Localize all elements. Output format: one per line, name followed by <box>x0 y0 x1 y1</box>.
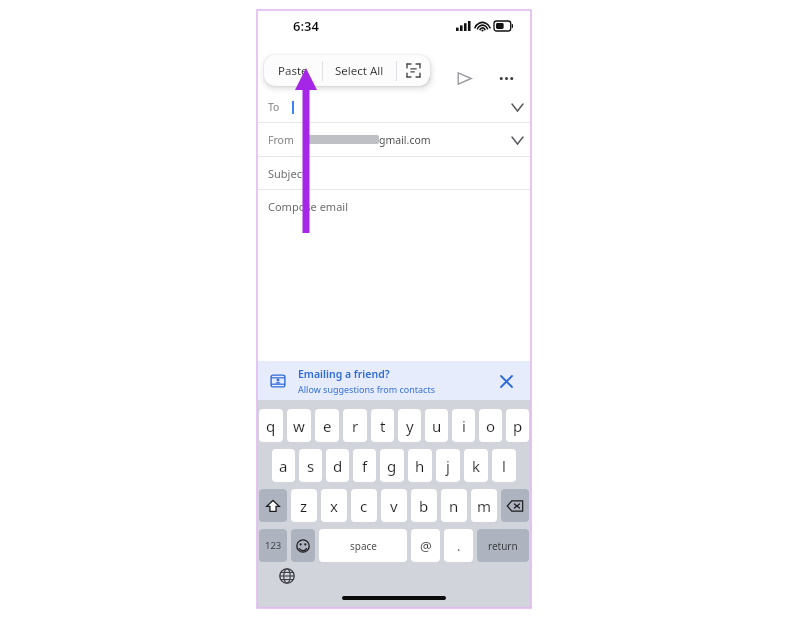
staticText: Allow suggestions from contacts <box>298 383 435 395</box>
staticText: q <box>266 416 276 436</box>
button[interactable]: space <box>319 529 407 562</box>
button[interactable]: Select All <box>323 55 396 86</box>
staticText: Compose email <box>268 199 348 214</box>
staticText: z <box>300 496 308 516</box>
button[interactable]: From <box>257 123 531 156</box>
staticText: d <box>333 456 343 476</box>
staticText: g <box>387 456 397 476</box>
staticText: From <box>268 133 294 147</box>
button[interactable]: f <box>353 449 376 482</box>
staticText: return <box>488 539 518 553</box>
button[interactable]: m <box>471 489 497 522</box>
button[interactable]: k <box>464 449 488 482</box>
button[interactable]: n <box>441 489 467 522</box>
button[interactable]: w <box>287 409 311 442</box>
button[interactable]: o <box>479 409 502 442</box>
button[interactable]: Backspace <box>501 489 529 522</box>
button[interactable]: Dismiss <box>489 364 523 398</box>
button[interactable]: Paste <box>264 55 322 86</box>
staticText: . <box>457 537 461 555</box>
button[interactable]: Scan text <box>397 55 430 86</box>
button[interactable]: j <box>436 449 460 482</box>
staticText: space <box>350 539 377 553</box>
button[interactable]: e <box>315 409 339 442</box>
staticText: Emailing a friend? <box>298 367 390 381</box>
button[interactable]: x <box>321 489 347 522</box>
button[interactable]: p <box>506 409 529 442</box>
button[interactable]: Emoji <box>291 529 315 562</box>
button[interactable]: i <box>452 409 475 442</box>
staticText: c <box>360 496 368 516</box>
staticText: m <box>477 496 492 516</box>
staticText: Subject <box>268 166 306 181</box>
staticText: p <box>513 416 523 436</box>
button[interactable]: h <box>408 449 432 482</box>
staticText: x <box>330 496 338 516</box>
button[interactable]: g <box>380 449 404 482</box>
button[interactable]: Shift <box>259 489 287 522</box>
staticText: a <box>279 456 288 476</box>
staticText: @ <box>420 537 432 555</box>
staticText: f <box>362 456 368 476</box>
button[interactable]: Subject <box>257 157 531 189</box>
button[interactable]: r <box>343 409 367 442</box>
button[interactable]: l <box>492 449 516 482</box>
button[interactable]: z <box>291 489 317 522</box>
staticText: u <box>432 416 442 436</box>
staticText: o <box>486 416 496 436</box>
staticText: Select All <box>335 63 384 79</box>
button[interactable]: c <box>351 489 377 522</box>
button[interactable]: Send <box>451 65 477 91</box>
staticText: l <box>502 456 506 476</box>
button[interactable]: q <box>259 409 283 442</box>
button[interactable]: 123 <box>259 529 287 562</box>
staticText: y <box>406 416 414 436</box>
staticText: gmail.com <box>379 133 431 147</box>
staticText: n <box>449 496 459 516</box>
button[interactable]: u <box>425 409 448 442</box>
button[interactable]: b <box>411 489 437 522</box>
button[interactable]: @ <box>411 529 440 562</box>
staticText: b <box>419 496 429 516</box>
button[interactable]: More options <box>493 65 519 91</box>
button[interactable]: a <box>272 449 295 482</box>
staticText: 6:34 <box>293 17 319 35</box>
button[interactable]: To <box>257 92 531 122</box>
button[interactable]: return <box>477 529 529 562</box>
button[interactable]: v <box>381 489 407 522</box>
staticText: j <box>446 456 450 476</box>
button[interactable]: Compose email <box>257 190 531 222</box>
staticText: i <box>462 416 466 436</box>
staticText: r <box>352 416 359 436</box>
button[interactable]: Attach file <box>409 65 435 91</box>
button[interactable]: d <box>326 449 349 482</box>
button[interactable]: Change keyboard <box>276 565 298 587</box>
button[interactable]: Expand <box>503 126 531 154</box>
button[interactable]: Expand <box>503 93 531 121</box>
staticText: h <box>415 456 425 476</box>
staticText: w <box>293 416 305 436</box>
staticText: To <box>268 100 280 114</box>
staticText: k <box>472 456 481 476</box>
staticText: s <box>307 456 315 476</box>
staticText: 123 <box>265 539 282 552</box>
staticText: Paste <box>278 63 308 79</box>
button[interactable]: . <box>444 529 473 562</box>
button[interactable]: t <box>371 409 394 442</box>
button[interactable]: Emailing a friend? <box>257 361 531 400</box>
staticText: t <box>380 416 386 436</box>
button[interactable]: y <box>398 409 421 442</box>
button[interactable]: s <box>299 449 322 482</box>
staticText: v <box>390 496 398 516</box>
staticText: e <box>323 416 332 436</box>
